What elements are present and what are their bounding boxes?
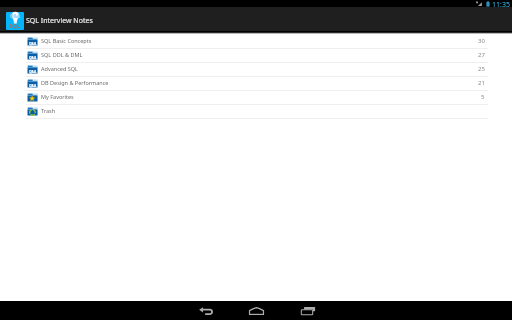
- button[interactable]: Back: [181, 301, 231, 320]
- button[interactable]: Recent apps: [281, 301, 331, 320]
- staticText: Advanced SQL: [41, 65, 78, 72]
- staticText: SQL DDL & DML: [41, 51, 83, 58]
- staticText: 25: [478, 65, 485, 73]
- staticText: DB Design & Performance: [41, 79, 109, 86]
- staticText: 5: [481, 93, 485, 101]
- staticText: Q&A: [29, 69, 37, 73]
- staticText: SQL: [9, 22, 21, 30]
- staticText: SQL Interview Notes: [26, 16, 93, 26]
- button[interactable]: Trash: [0, 105, 512, 119]
- button[interactable]: Q&A: [0, 7, 512, 31]
- button[interactable]: Q&A: [0, 49, 512, 63]
- button[interactable]: Q&A: [0, 35, 512, 49]
- staticText: Q&A: [29, 55, 37, 59]
- staticText: 30: [478, 37, 485, 45]
- button[interactable]: Q&A: [0, 63, 512, 77]
- staticText: Trash: [41, 107, 56, 114]
- button[interactable]: Q&A: [0, 77, 512, 91]
- staticText: Q&A: [29, 83, 37, 87]
- button[interactable]: My Favorites: [0, 91, 512, 105]
- staticText: 21: [478, 79, 485, 87]
- staticText: 27: [478, 51, 485, 59]
- staticText: 11:35: [492, 0, 510, 7]
- staticText: SQL Basic Concepts: [41, 37, 92, 44]
- staticText: Q&A: [10, 13, 21, 19]
- staticText: Q&A: [29, 41, 37, 45]
- staticText: My Favorites: [41, 93, 74, 100]
- button[interactable]: Home: [231, 301, 281, 320]
